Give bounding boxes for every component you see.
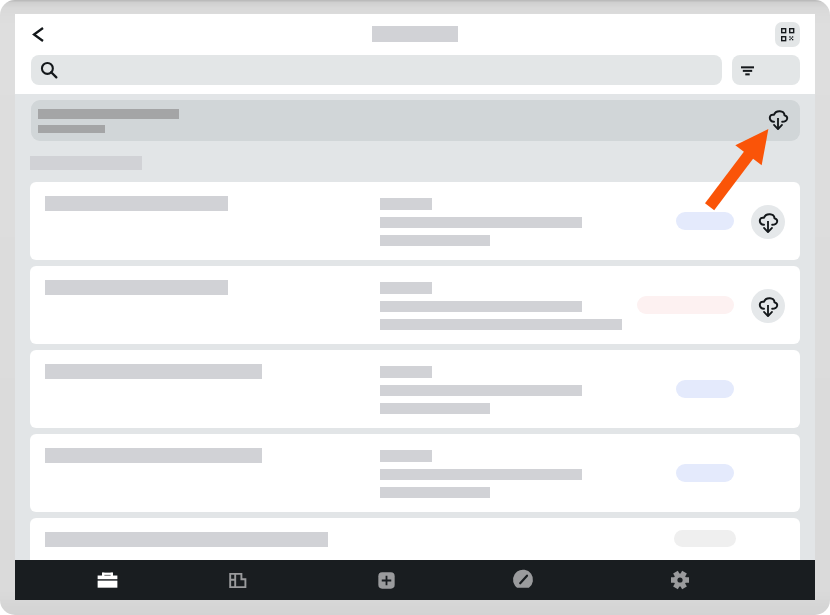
button[interactable] xyxy=(31,55,722,85)
button[interactable] xyxy=(30,518,800,596)
button[interactable]: Download xyxy=(30,182,800,260)
button[interactable]: Add xyxy=(346,560,426,600)
button[interactable] xyxy=(30,350,800,428)
button[interactable]: Scan code xyxy=(775,22,800,47)
button[interactable]: Floor plan xyxy=(198,560,278,600)
button[interactable]: Jobs xyxy=(67,560,147,600)
button[interactable]: Settings xyxy=(640,560,720,600)
button[interactable]: Download xyxy=(765,107,793,135)
button[interactable]: Download xyxy=(751,205,785,239)
button[interactable]: Download xyxy=(30,266,800,344)
button[interactable]: Filter xyxy=(732,55,800,85)
button[interactable]: Download xyxy=(751,289,785,323)
button[interactable] xyxy=(30,434,800,512)
button[interactable]: Meters xyxy=(483,560,563,600)
button[interactable]: Back xyxy=(15,14,61,55)
button[interactable]: Download xyxy=(31,100,800,141)
